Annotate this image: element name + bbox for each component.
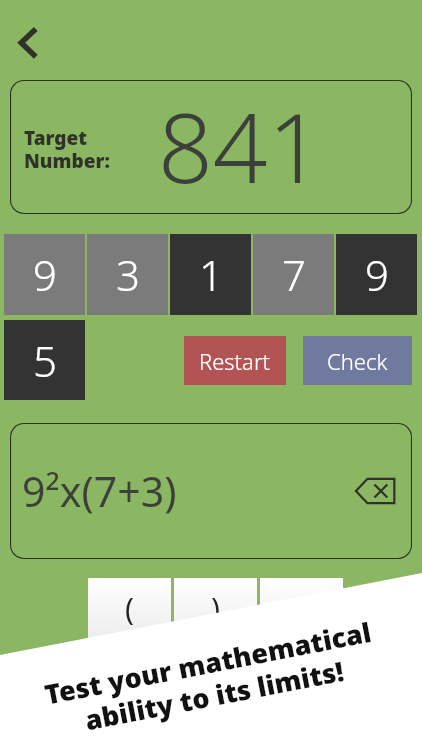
button[interactable]: 9 xyxy=(336,234,417,315)
staticText: Target Number: xyxy=(24,125,110,174)
button[interactable] xyxy=(260,578,343,638)
staticText: 1 xyxy=(199,246,223,303)
staticText: ) xyxy=(211,588,220,629)
button[interactable]: 9 xyxy=(4,234,85,315)
button[interactable]: 5 xyxy=(4,320,85,400)
button[interactable]: Restart xyxy=(184,336,286,385)
button[interactable]: ( xyxy=(88,578,171,638)
staticText: Restart xyxy=(199,346,271,376)
staticText: 3 xyxy=(116,246,140,303)
button[interactable]: Target Number: xyxy=(10,80,412,214)
button[interactable]: 3 xyxy=(87,234,168,315)
staticText: 5 xyxy=(33,332,57,389)
button[interactable]: Back xyxy=(6,22,46,62)
staticText: 841 xyxy=(158,80,323,211)
staticText: Test your mathematical ability to its li… xyxy=(41,613,381,745)
button[interactable]: 7 xyxy=(253,234,334,315)
button[interactable]: Backspace xyxy=(354,472,402,510)
button[interactable]: Check xyxy=(303,336,412,385)
staticText: Check xyxy=(327,346,388,376)
staticText: 7 xyxy=(282,246,306,303)
staticText: ( xyxy=(125,588,134,629)
button[interactable]: 9²x(7+3) xyxy=(10,423,412,559)
button[interactable]: 1 xyxy=(170,234,251,315)
staticText: 9 xyxy=(33,246,57,303)
staticText: 9 xyxy=(365,246,389,303)
staticText: 9²x(7+3) xyxy=(22,463,177,519)
button[interactable]: ) xyxy=(174,578,257,638)
